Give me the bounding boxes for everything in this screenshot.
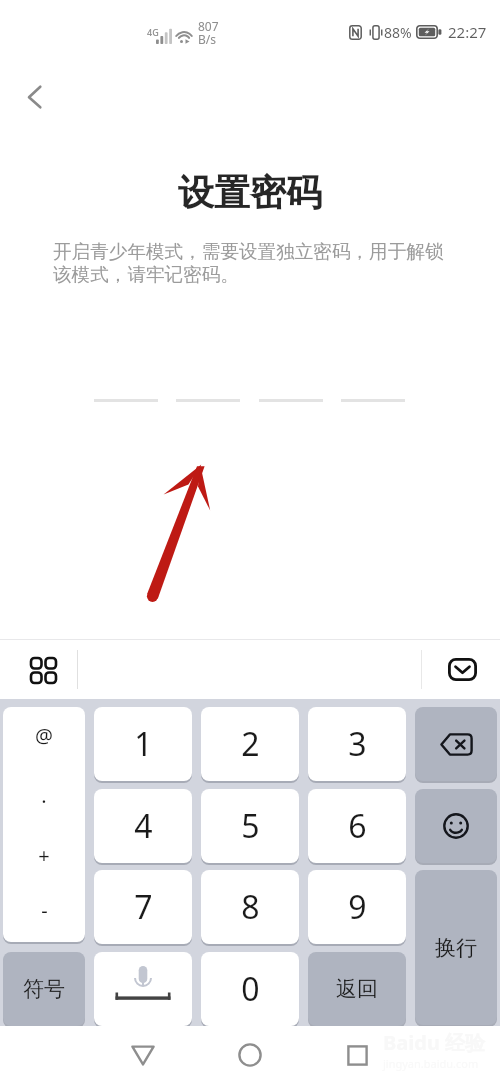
button[interactable]: 9 <box>308 870 406 944</box>
button[interactable]: Home <box>226 1031 274 1079</box>
button[interactable]: 符号 <box>3 952 85 1026</box>
staticText: 7 <box>134 885 153 929</box>
staticText: + <box>38 842 50 869</box>
button[interactable]: 2 <box>201 707 299 781</box>
button[interactable] <box>415 707 497 781</box>
staticText: 9 <box>348 885 367 929</box>
staticText: 符号 <box>23 976 65 1002</box>
staticText: - <box>41 897 48 924</box>
button[interactable]: Hide keyboard <box>442 649 482 689</box>
button[interactable]: 换行 <box>415 870 497 1025</box>
button[interactable]: Recents <box>333 1031 381 1079</box>
staticText: 4 <box>134 804 153 848</box>
staticText: 5 <box>241 804 260 848</box>
staticText: · <box>41 788 47 815</box>
button[interactable]: @ <box>3 707 85 942</box>
staticText: 4G <box>147 26 159 38</box>
button[interactable]: 1 <box>94 707 192 781</box>
button[interactable]: 7 <box>94 870 192 944</box>
staticText: 该模式，请牢记密码。 <box>53 263 239 286</box>
staticText: 设置密码 <box>178 170 322 215</box>
button[interactable]: 5 <box>201 789 299 863</box>
staticText: 88% <box>384 23 412 42</box>
button[interactable]: 0 <box>201 952 299 1026</box>
staticText: 返回 <box>336 976 378 1002</box>
staticText: B/s <box>198 31 217 47</box>
button[interactable]: 4 <box>94 789 192 863</box>
button[interactable]: Keyboard layouts <box>23 650 63 690</box>
staticText: Baidu 经验 <box>383 1029 486 1056</box>
staticText: @ <box>35 722 53 749</box>
button[interactable]: 6 <box>308 789 406 863</box>
staticText: 807 <box>198 18 219 34</box>
button[interactable]: 8 <box>201 870 299 944</box>
button[interactable]: Back <box>119 1031 167 1079</box>
button[interactable] <box>94 952 192 1026</box>
staticText: 6 <box>348 804 367 848</box>
staticText: 8 <box>241 885 260 929</box>
staticText: 3 <box>348 722 367 766</box>
staticText: 22:27 <box>448 22 487 42</box>
button[interactable]: Back <box>14 76 56 118</box>
staticText: 换行 <box>435 935 477 961</box>
staticText: 0 <box>241 967 260 1011</box>
staticText: 开启青少年模式，需要设置独立密码，用于解锁 <box>53 240 444 263</box>
button[interactable]: 返回 <box>308 952 406 1026</box>
staticText: 2 <box>241 722 260 766</box>
button[interactable] <box>415 789 497 863</box>
staticText: 1 <box>134 722 153 766</box>
button[interactable]: 3 <box>308 707 406 781</box>
